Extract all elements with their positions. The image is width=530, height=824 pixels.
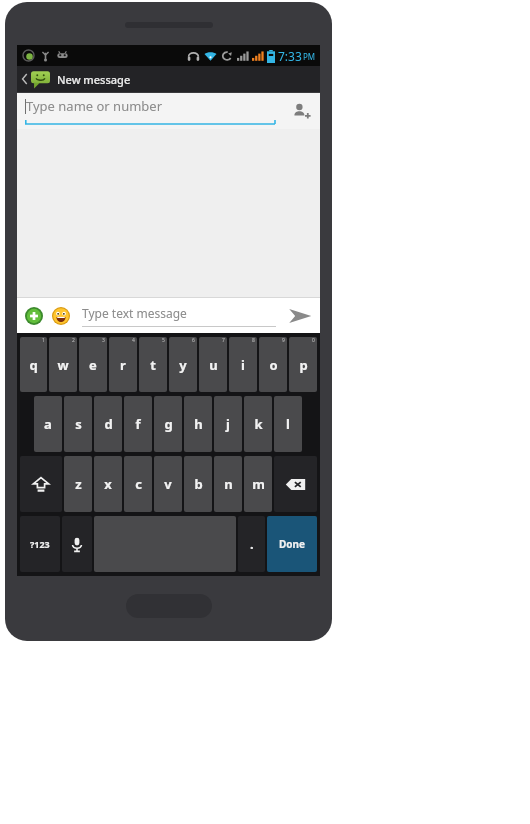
staticText: i [241, 356, 245, 374]
button[interactable]: Shift [20, 456, 62, 512]
staticText: u [209, 356, 218, 374]
button[interactable]: s [64, 396, 92, 452]
staticText: 9 [282, 337, 285, 344]
staticText: y [179, 356, 187, 374]
staticText: 6 [192, 337, 195, 344]
button[interactable]: c [124, 456, 152, 512]
button[interactable]: l [274, 396, 302, 452]
button[interactable]: Backspace [274, 456, 317, 512]
staticText: 7 [222, 337, 225, 344]
staticText: New message [57, 72, 131, 87]
staticText: f [135, 415, 141, 433]
staticText: m [252, 475, 265, 493]
staticText: 4 [132, 337, 135, 344]
button[interactable]: 2 [49, 337, 77, 392]
button[interactable]: Symbols [20, 516, 60, 572]
staticText: p [299, 356, 308, 374]
button[interactable]: f [124, 396, 152, 452]
staticText: a [44, 415, 52, 433]
button[interactable]: Send message [286, 302, 314, 330]
staticText: d [104, 415, 113, 433]
staticText: 2 [72, 337, 75, 344]
staticText: b [194, 475, 203, 493]
button[interactable]: m [244, 456, 272, 512]
button[interactable]: g [154, 396, 182, 452]
button[interactable]: 4 [109, 337, 137, 392]
button[interactable]: Period [238, 516, 265, 572]
button[interactable]: Type name or number [25, 97, 280, 125]
staticText: g [164, 415, 173, 433]
button[interactable]: 8 [229, 337, 257, 392]
staticText: PM [303, 51, 316, 62]
button[interactable]: 7 [199, 337, 227, 392]
button[interactable]: Type text message [82, 305, 276, 327]
staticText: r [120, 356, 126, 374]
staticText: 7:33 [278, 48, 302, 64]
button[interactable]: 5 [139, 337, 167, 392]
button[interactable]: Add attachment [23, 305, 45, 327]
staticText: 8 [252, 337, 255, 344]
staticText: q [29, 356, 38, 374]
staticText: n [224, 475, 233, 493]
button[interactable]: n [214, 456, 242, 512]
staticText: z [75, 475, 82, 493]
button[interactable]: 1 [20, 337, 47, 392]
staticText: w [57, 356, 69, 374]
button[interactable]: j [214, 396, 242, 452]
staticText: o [269, 356, 278, 374]
staticText: Type name or number [26, 97, 163, 115]
staticText: Type text message [82, 305, 187, 321]
button[interactable]: d [94, 396, 122, 452]
button[interactable]: h [184, 396, 212, 452]
staticText: t [150, 356, 156, 374]
button[interactable]: x [94, 456, 122, 512]
staticText: 3 [102, 337, 105, 344]
staticText: ?123 [30, 538, 50, 550]
staticText: k [254, 415, 263, 433]
staticText: c [135, 475, 142, 493]
staticText: s [75, 415, 82, 433]
button[interactable]: b [184, 456, 212, 512]
staticText: h [194, 415, 203, 433]
staticText: 0 [312, 337, 315, 344]
staticText: j [226, 415, 230, 433]
staticText: . [250, 535, 254, 553]
button[interactable]: 9 [259, 337, 287, 392]
staticText: l [286, 415, 290, 433]
staticText: Done [279, 537, 306, 551]
staticText: x [104, 475, 112, 493]
button[interactable]: v [154, 456, 182, 512]
button[interactable]: k [244, 396, 272, 452]
button[interactable]: Insert emoji [50, 305, 72, 327]
staticText: e [89, 356, 97, 374]
button[interactable]: z [64, 456, 92, 512]
button[interactable]: Navigate up [17, 66, 139, 92]
button[interactable]: 0 [289, 337, 317, 392]
button[interactable]: Voice input [62, 516, 92, 572]
button[interactable]: Add recipient from contacts [288, 98, 314, 124]
button[interactable]: 3 [79, 337, 107, 392]
staticText: v [164, 475, 172, 493]
staticText: 1 [42, 337, 45, 344]
button[interactable]: Done [267, 516, 317, 572]
staticText: 5 [162, 337, 165, 344]
button[interactable]: 6 [169, 337, 197, 392]
button[interactable]: a [34, 396, 62, 452]
